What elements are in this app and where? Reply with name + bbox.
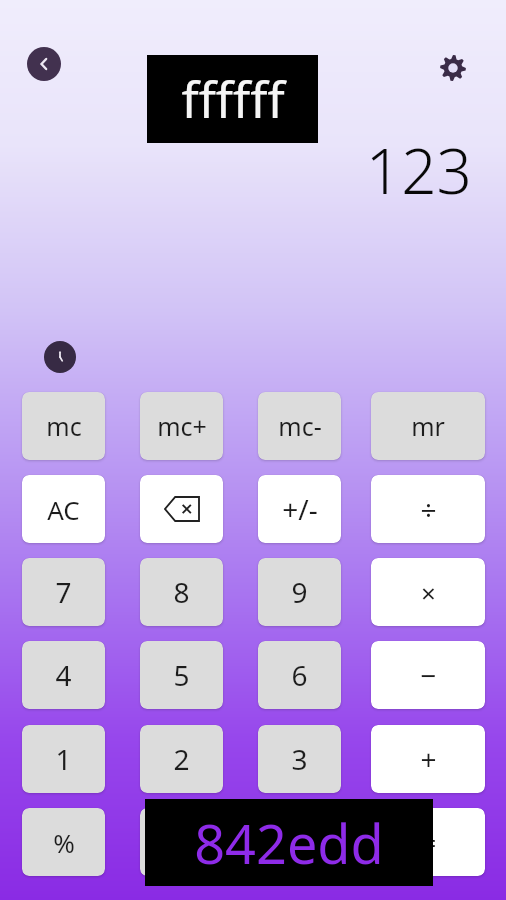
button[interactable]: 8 bbox=[140, 558, 223, 626]
button[interactable]: mc bbox=[22, 392, 105, 460]
staticText: 6 bbox=[291, 656, 308, 694]
staticText: 1 bbox=[55, 740, 72, 778]
button[interactable]: +/- bbox=[258, 475, 341, 543]
button[interactable]: mc+ bbox=[140, 392, 223, 460]
button[interactable]: × bbox=[371, 558, 485, 626]
staticText: ffffff bbox=[181, 65, 285, 133]
staticText: mr bbox=[411, 409, 445, 443]
button[interactable]: . bbox=[258, 808, 341, 876]
staticText: ÷ bbox=[420, 490, 437, 528]
button[interactable]: 0 bbox=[140, 808, 223, 876]
staticText: 3 bbox=[291, 740, 308, 778]
button[interactable]: 2 bbox=[140, 725, 223, 793]
staticText: + bbox=[420, 740, 437, 778]
staticText: × bbox=[421, 575, 436, 610]
staticText: 123 bbox=[365, 128, 472, 198]
button[interactable]: 3 bbox=[258, 725, 341, 793]
button[interactable]: 5 bbox=[140, 641, 223, 709]
staticText: 4 bbox=[55, 656, 72, 694]
staticText: +/- bbox=[282, 490, 318, 528]
button[interactable]: 4 bbox=[22, 641, 105, 709]
staticText: mc- bbox=[278, 409, 322, 443]
staticText: 9 bbox=[291, 573, 308, 611]
staticText: 2 bbox=[173, 740, 190, 778]
staticText: − bbox=[420, 656, 437, 694]
staticText: 5 bbox=[173, 656, 190, 694]
button[interactable]: Backspace bbox=[140, 475, 223, 543]
staticText: AC bbox=[47, 492, 80, 527]
staticText: 842edd bbox=[194, 806, 384, 880]
button[interactable]: = bbox=[371, 808, 485, 876]
staticText: 7 bbox=[55, 573, 72, 611]
staticText: % bbox=[53, 825, 75, 860]
button[interactable]: mc- bbox=[258, 392, 341, 460]
button[interactable]: ÷ bbox=[371, 475, 485, 543]
button[interactable]: History bbox=[44, 341, 76, 373]
button[interactable]: Settings bbox=[433, 48, 473, 88]
button[interactable]: 7 bbox=[22, 558, 105, 626]
button[interactable]: + bbox=[371, 725, 485, 793]
staticText: . bbox=[296, 823, 304, 861]
button[interactable]: − bbox=[371, 641, 485, 709]
button[interactable]: % bbox=[22, 808, 105, 876]
button[interactable]: mr bbox=[371, 392, 485, 460]
staticText: 8 bbox=[173, 573, 190, 611]
button[interactable]: 6 bbox=[258, 641, 341, 709]
button[interactable]: 1 bbox=[22, 725, 105, 793]
staticText: mc+ bbox=[157, 409, 207, 443]
button[interactable]: 9 bbox=[258, 558, 341, 626]
button[interactable]: AC bbox=[22, 475, 105, 543]
staticText: mc bbox=[46, 409, 82, 443]
button[interactable]: Back bbox=[27, 47, 61, 81]
staticText: = bbox=[420, 823, 437, 861]
